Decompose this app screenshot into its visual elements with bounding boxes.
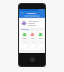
- button[interactable]: [19, 14, 45, 17]
- other: App icon: [22, 32, 27, 37]
- button[interactable]: App icon: [37, 31, 44, 40]
- button[interactable]: Open navigation menu: [19, 11, 45, 14]
- other: App icon: [30, 32, 35, 37]
- other: App icon: [38, 32, 43, 37]
- button[interactable]: App icon: [20, 31, 28, 40]
- other: App icon: [21, 20, 27, 26]
- button[interactable]: [37, 41, 44, 50]
- button[interactable]: Open navigation menu: [21, 12, 23, 14]
- button[interactable]: App icon: [29, 31, 36, 40]
- button[interactable]: App icon: [20, 19, 44, 28]
- button[interactable]: [24, 15, 40, 17]
- button[interactable]: [20, 41, 28, 50]
- button[interactable]: [29, 41, 36, 50]
